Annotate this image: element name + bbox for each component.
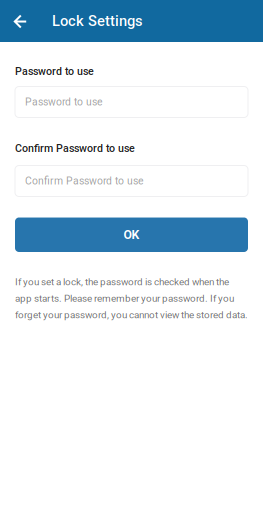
staticText: Confirm Password to use	[25, 175, 144, 187]
button[interactable]: Back	[0, 0, 41, 42]
staticText: Password to use	[15, 65, 94, 77]
staticText: Password to use	[25, 96, 103, 108]
button[interactable]: Confirm Password to use	[15, 165, 248, 196]
staticText: If you set a lock, the password is check…	[15, 276, 248, 321]
staticText: Confirm Password to use	[15, 142, 135, 154]
button[interactable]: OK	[15, 217, 248, 252]
staticText: OK	[123, 228, 139, 242]
staticText: Lock Settings	[52, 12, 143, 30]
button[interactable]: Password to use	[15, 86, 248, 117]
